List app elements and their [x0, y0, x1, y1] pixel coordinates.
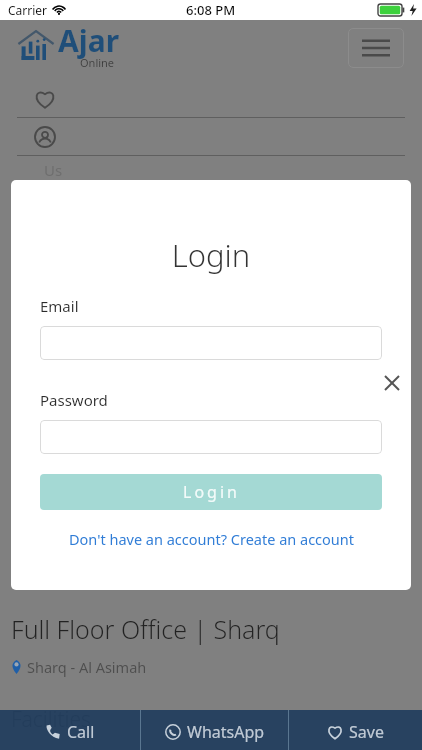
button[interactable]: WhatsApp [141, 710, 288, 750]
staticText: Login [183, 481, 240, 503]
staticText: WhatsApp [187, 721, 265, 743]
button[interactable]: Login [40, 474, 382, 510]
button[interactable] [0, 118, 422, 156]
button[interactable] [0, 80, 422, 118]
staticText: Ajar [58, 20, 120, 61]
staticText: Full Floor Office | Sharq [11, 612, 280, 646]
staticText: 6:08 PM [186, 1, 236, 19]
button[interactable] [40, 326, 382, 360]
button[interactable]: Close [375, 366, 409, 400]
staticText: Don't have an account? Create an account [69, 529, 354, 549]
button[interactable]: Call [0, 710, 140, 750]
staticText: Password [40, 390, 108, 410]
button[interactable] [40, 420, 382, 454]
staticText: Call [67, 721, 95, 743]
staticText: Carrier [8, 2, 48, 18]
button[interactable]: Menu [348, 28, 404, 68]
staticText: Us [44, 160, 63, 180]
staticText: Email [40, 296, 79, 316]
staticText: Login [11, 234, 411, 276]
button[interactable]: Don't have an account? Create an account [11, 526, 411, 552]
button[interactable]: Save [289, 710, 422, 750]
staticText: Sharq - Al Asimah [27, 657, 147, 677]
staticText: Facilities [11, 705, 91, 734]
staticText: Online [80, 55, 115, 70]
staticText: Save [349, 721, 384, 743]
